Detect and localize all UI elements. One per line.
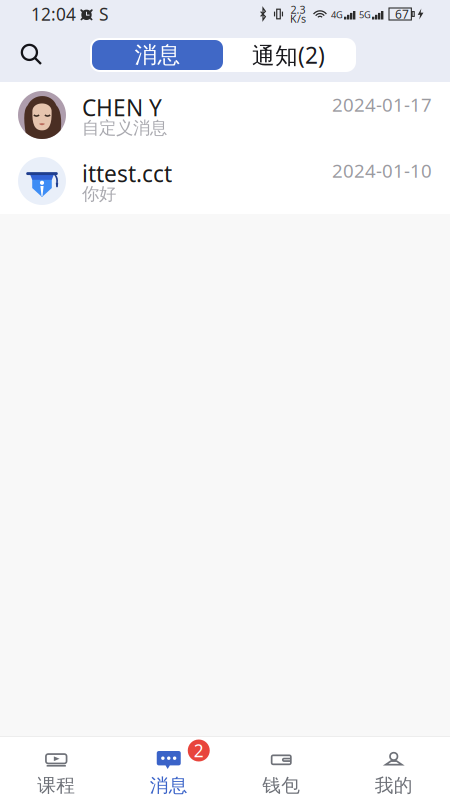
staticText: 4G [331,8,343,21]
button[interactable]: 消息 [92,40,223,70]
staticText: 67 [395,6,409,22]
button[interactable]: 课程 [0,737,112,800]
button[interactable]: 我的 [337,737,450,800]
staticText: 钱包 [262,774,300,797]
button[interactable]: 2 [112,737,225,800]
staticText: 自定义消息 [82,117,167,139]
staticText: 课程 [37,774,75,797]
button[interactable]: 通知(2) [223,40,354,70]
staticText: 消息 [134,41,180,69]
button[interactable]: ittest.cct [0,148,450,214]
staticText: 5G [359,8,371,21]
staticText: S [99,2,109,25]
staticText: 12:04 [31,2,76,25]
button[interactable]: 钱包 [225,737,337,800]
staticText: 通知(2) [252,40,325,70]
staticText: K/s [290,11,306,26]
staticText: 你好 [82,183,116,205]
staticText: ittest.cct [82,158,172,188]
staticText: 2024-01-10 [332,158,432,183]
staticText: 消息 [150,774,188,797]
button[interactable]: CHEN Y [0,82,450,148]
staticText: 2024-01-17 [332,92,432,117]
staticText: 我的 [375,774,413,797]
staticText: CHEN Y [82,92,162,122]
staticText: 2 [194,739,204,762]
staticText: 2.3 [290,2,305,17]
button[interactable]: Search [0,28,57,82]
